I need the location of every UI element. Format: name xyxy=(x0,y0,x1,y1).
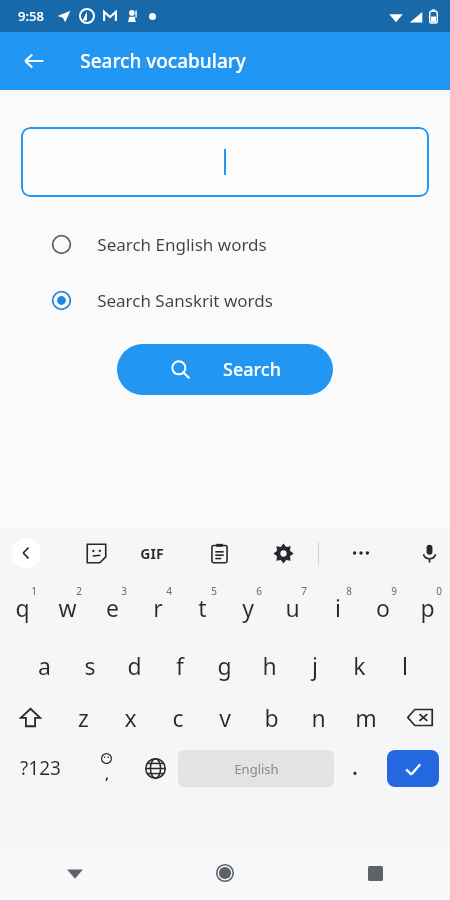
button[interactable]: d xyxy=(112,648,157,682)
button[interactable]: y xyxy=(225,584,270,630)
staticText: t xyxy=(198,592,207,623)
button[interactable]: h xyxy=(247,648,292,682)
staticText: , xyxy=(105,764,109,783)
staticText: 0 xyxy=(436,584,442,598)
button[interactable]: Enter xyxy=(387,750,439,787)
staticText: b xyxy=(264,702,279,733)
button[interactable]: u xyxy=(270,584,315,630)
staticText: c xyxy=(172,702,184,733)
button[interactable]: k xyxy=(337,648,382,682)
button[interactable]: More xyxy=(344,536,378,570)
staticText: h xyxy=(262,650,277,681)
staticText: Search vocabulary xyxy=(80,48,246,74)
button[interactable]: g xyxy=(202,648,247,682)
staticText: v xyxy=(219,702,231,733)
staticText: e xyxy=(106,592,119,623)
staticText: . xyxy=(352,755,358,781)
button[interactable]: s xyxy=(67,648,112,682)
staticText: 8 xyxy=(346,584,352,598)
button[interactable]: j xyxy=(292,648,337,682)
staticText: 6 xyxy=(256,584,262,598)
staticText: English xyxy=(234,760,279,778)
staticText: z xyxy=(78,702,89,733)
staticText: GIF xyxy=(140,544,164,563)
staticText: ?123 xyxy=(20,755,61,781)
button[interactable]: Back xyxy=(11,538,41,568)
staticText: g xyxy=(217,650,232,681)
button[interactable]: o xyxy=(360,584,405,630)
button[interactable]: Voice input xyxy=(412,536,446,570)
button[interactable]: t xyxy=(180,584,225,630)
button[interactable]: c xyxy=(154,700,201,734)
staticText: k xyxy=(353,650,366,681)
staticText: 1 xyxy=(31,584,37,598)
staticText: 2 xyxy=(76,584,82,598)
button[interactable]: r xyxy=(135,584,180,630)
button[interactable]: f xyxy=(157,648,202,682)
button[interactable]: GIF xyxy=(134,535,170,571)
staticText: 9:58 xyxy=(18,7,44,25)
button[interactable]: a xyxy=(22,648,67,682)
staticText: Search xyxy=(223,357,281,382)
button[interactable]: Search xyxy=(117,344,333,395)
staticText: u xyxy=(285,592,300,623)
staticText: w xyxy=(58,592,77,623)
staticText: d xyxy=(127,650,142,681)
staticText: s xyxy=(84,650,96,681)
staticText: j xyxy=(312,650,318,681)
button[interactable]: Stickers xyxy=(79,536,113,570)
button[interactable]: Recents xyxy=(300,846,450,900)
staticText: m xyxy=(355,702,377,733)
staticText: 3 xyxy=(121,584,127,598)
button[interactable]: x xyxy=(107,700,154,734)
button[interactable]: Search English words xyxy=(0,227,450,261)
staticText: 9 xyxy=(391,584,397,598)
button[interactable]: w xyxy=(45,584,90,630)
button[interactable]: Shift xyxy=(0,700,60,734)
button[interactable]: Search Sanskrit words xyxy=(0,283,450,317)
staticText: Search English words xyxy=(97,233,267,256)
staticText: 5 xyxy=(211,584,217,598)
button[interactable]: . xyxy=(334,748,376,788)
staticText: f xyxy=(176,650,184,681)
staticText: x xyxy=(124,702,137,733)
button[interactable]: i xyxy=(315,584,360,630)
button[interactable]: Settings xyxy=(266,536,300,570)
button[interactable]: Backspace xyxy=(389,700,450,734)
staticText: n xyxy=(311,702,326,733)
staticText: i xyxy=(335,592,341,623)
button[interactable]: p xyxy=(405,584,450,630)
button[interactable]: English xyxy=(178,750,334,787)
button[interactable]: n xyxy=(295,700,342,734)
button[interactable]: v xyxy=(201,700,248,734)
button[interactable]: Back xyxy=(14,41,54,81)
button[interactable]: q xyxy=(0,584,45,630)
staticText: Search Sanskrit words xyxy=(97,289,273,312)
staticText: y xyxy=(242,592,254,623)
button[interactable]: Change language xyxy=(132,748,178,788)
button[interactable]: Back xyxy=(0,846,150,900)
staticText: 4 xyxy=(166,584,172,598)
staticText: a xyxy=(38,650,51,681)
button[interactable]: z xyxy=(60,700,107,734)
button[interactable] xyxy=(21,127,429,197)
button[interactable]: Clipboard xyxy=(202,536,236,570)
staticText: o xyxy=(376,592,390,623)
button[interactable]: Emoji xyxy=(80,748,132,788)
button[interactable]: e xyxy=(90,584,135,630)
staticText: p xyxy=(420,592,435,623)
button[interactable]: Home xyxy=(150,846,300,900)
button[interactable]: ?123 xyxy=(0,748,80,788)
staticText: 7 xyxy=(301,584,307,598)
button[interactable]: m xyxy=(342,700,389,734)
staticText: q xyxy=(15,592,30,623)
button[interactable]: b xyxy=(248,700,295,734)
button[interactable]: l xyxy=(382,648,427,682)
staticText: l xyxy=(402,650,408,681)
staticText: r xyxy=(153,592,163,623)
